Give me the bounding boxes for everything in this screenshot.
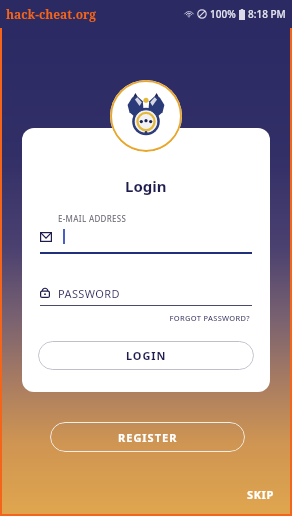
staticText: hack-cheat.org: [6, 6, 97, 22]
staticText: REGISTER: [118, 430, 178, 445]
staticText: Login: [125, 176, 167, 196]
staticText: 8:18 PM: [248, 7, 286, 21]
button[interactable]: REGISTER: [50, 422, 245, 452]
staticText: 100%: [210, 7, 236, 21]
button[interactable]: SKIP: [241, 483, 280, 506]
staticText: LOGIN: [126, 348, 167, 363]
staticText: E-MAIL ADDRESS: [58, 213, 127, 224]
staticText: FORGOT PASSWORD?: [169, 313, 250, 323]
staticText: PASSWORD: [58, 286, 120, 301]
button[interactable]: FORGOT PASSWORD?: [167, 311, 252, 325]
button[interactable]: LOGIN: [38, 341, 254, 370]
staticText: SKIP: [247, 487, 274, 502]
